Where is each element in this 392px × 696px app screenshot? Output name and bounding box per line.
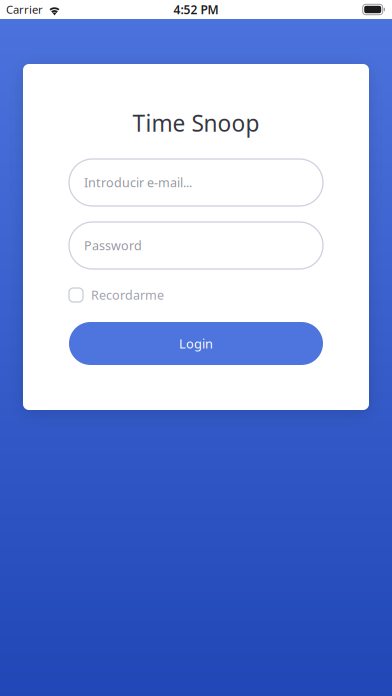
button[interactable]: Password [69,222,323,269]
staticText: Recordarme [91,286,164,304]
staticText: Time Snoop [132,108,259,138]
staticText: Login [179,335,213,352]
staticText: Carrier [6,2,43,17]
button[interactable]: Introducir e-mail... [69,159,323,206]
staticText: Introducir e-mail... [84,174,192,191]
button[interactable]: Login [69,322,323,365]
button[interactable]: Recordarme [69,287,323,303]
staticText: Password [84,237,142,254]
staticText: 4:52 PM [173,1,218,18]
